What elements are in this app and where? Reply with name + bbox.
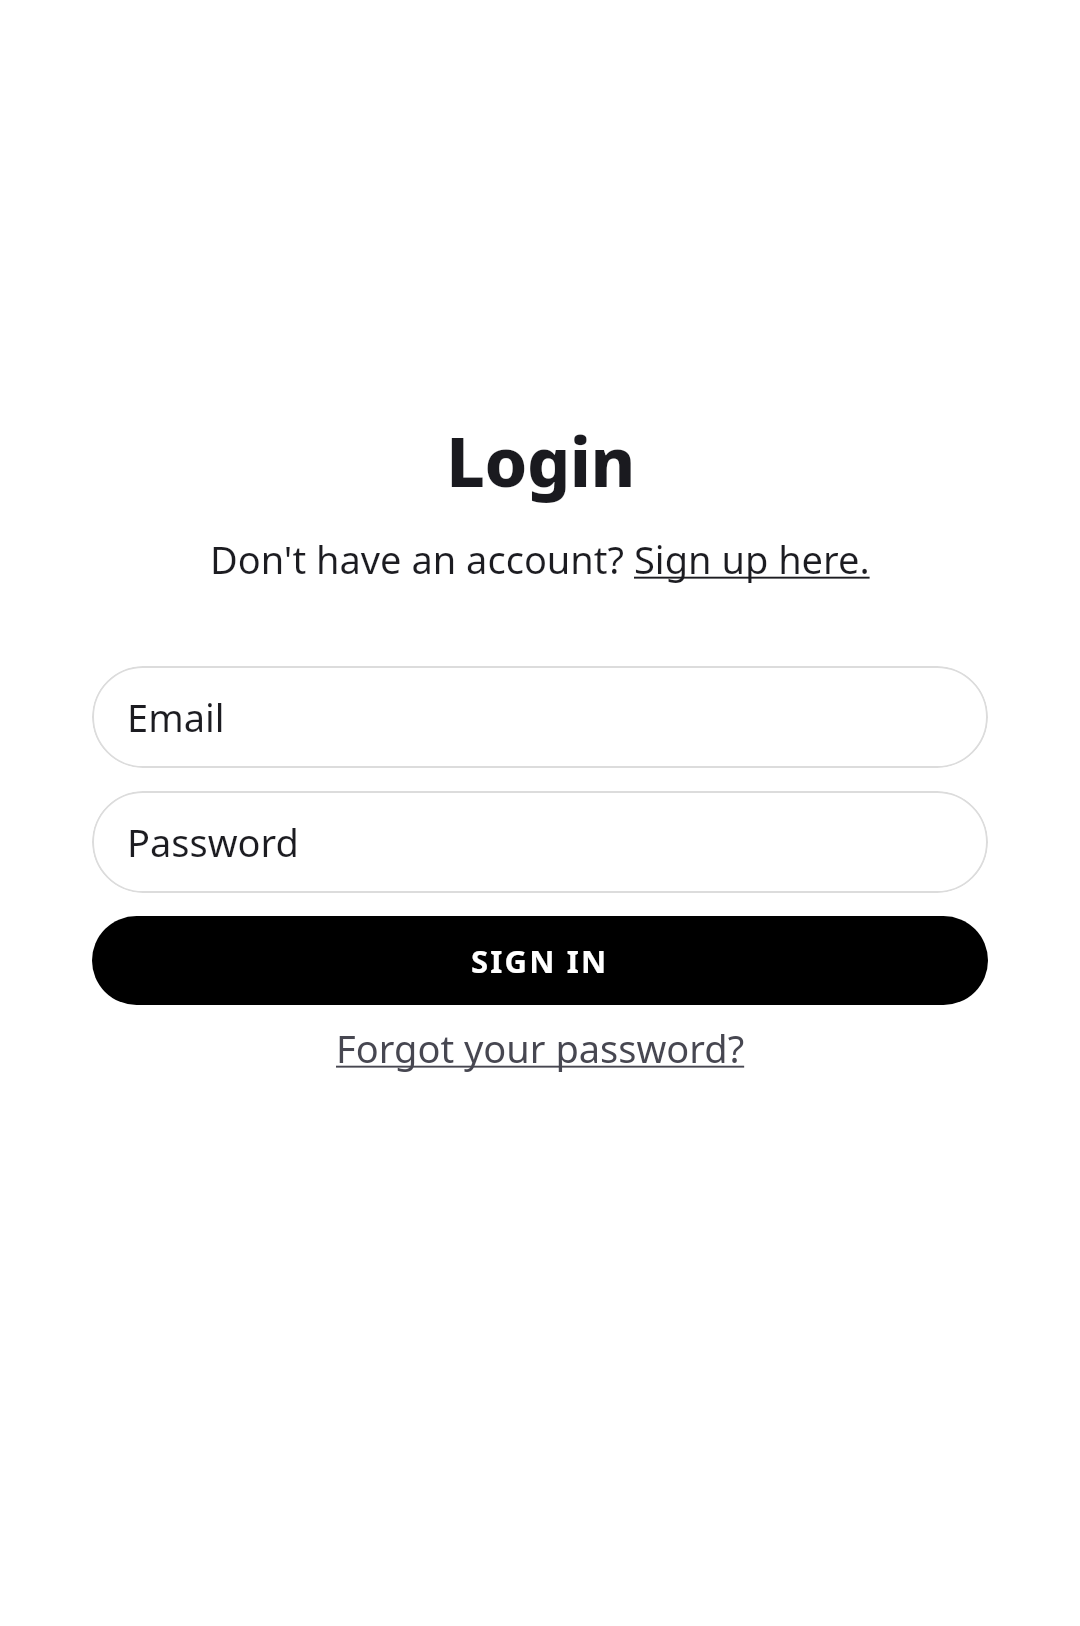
staticText: Login xyxy=(446,414,635,507)
staticText: Don't have an account? xyxy=(210,533,634,585)
button[interactable]: SIGN IN xyxy=(92,916,988,1005)
staticText: Password xyxy=(127,816,299,868)
button[interactable]: Sign up here. xyxy=(634,533,870,585)
staticText: Forgot your password? xyxy=(336,1022,745,1074)
button[interactable]: Forgot your password? xyxy=(336,1016,745,1080)
button[interactable]: Password xyxy=(92,791,988,893)
staticText: SIGN IN xyxy=(471,940,609,982)
button[interactable]: Email xyxy=(92,666,988,768)
staticText: Email xyxy=(127,691,225,743)
staticText: Sign up here. xyxy=(634,533,870,585)
